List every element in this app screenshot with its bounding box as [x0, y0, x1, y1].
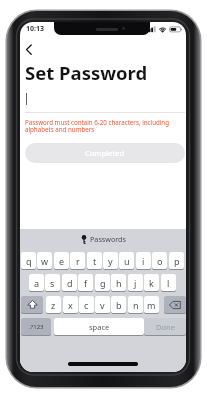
- button[interactable]: j: [128, 274, 143, 291]
- staticText: v: [100, 299, 105, 311]
- staticText: space: [89, 322, 110, 332]
- button[interactable]: Completed: [25, 143, 185, 163]
- staticText: p: [174, 255, 180, 267]
- button[interactable]: a: [29, 274, 44, 291]
- staticText: 10:13: [26, 24, 44, 34]
- staticText: Passwords: [90, 234, 126, 244]
- button[interactable]: Passwords: [20, 231, 186, 247]
- staticText: m: [147, 299, 156, 311]
- button[interactable]: x: [63, 296, 78, 313]
- button[interactable]: h: [111, 274, 126, 291]
- staticText: i: [142, 255, 145, 267]
- staticText: g: [100, 277, 106, 289]
- staticText: y: [108, 255, 113, 267]
- button[interactable]: t: [87, 252, 102, 269]
- button[interactable]: f: [78, 274, 93, 291]
- staticText: d: [67, 277, 73, 289]
- staticText: c: [84, 299, 89, 311]
- staticText: z: [51, 299, 56, 311]
- staticText: Completed: [85, 148, 125, 158]
- button[interactable]: p: [169, 252, 184, 269]
- button[interactable]: o: [152, 252, 167, 269]
- button[interactable]: s: [45, 274, 60, 291]
- staticText: Set Password: [25, 60, 148, 85]
- staticText: t: [93, 255, 97, 267]
- button[interactable]: g: [95, 274, 110, 291]
- staticText: s: [50, 277, 55, 289]
- button[interactable]: z: [46, 296, 61, 313]
- button[interactable]: space: [54, 318, 144, 335]
- button[interactable]: u: [119, 252, 134, 269]
- staticText: l: [167, 277, 170, 289]
- staticText: f: [84, 277, 88, 289]
- button[interactable]: b: [111, 296, 126, 313]
- button[interactable]: l: [161, 274, 176, 291]
- staticText: h: [116, 277, 122, 289]
- button[interactable]: w: [37, 252, 52, 269]
- staticText: r: [76, 255, 80, 267]
- button[interactable]: k: [144, 274, 159, 291]
- staticText: Done: [156, 322, 175, 332]
- button[interactable]: r: [70, 252, 85, 269]
- staticText: x: [68, 299, 73, 311]
- button[interactable]: i: [136, 252, 151, 269]
- staticText: u: [124, 255, 130, 267]
- button[interactable]: e: [54, 252, 69, 269]
- button[interactable]: [21, 296, 43, 313]
- staticText: Password must contain 6-20 characters, i…: [25, 118, 169, 134]
- button[interactable]: [164, 296, 186, 313]
- staticText: q: [26, 255, 32, 267]
- staticText: e: [59, 255, 65, 267]
- staticText: a: [34, 277, 40, 289]
- button[interactable]: q: [21, 252, 36, 269]
- staticText: n: [133, 299, 139, 311]
- button[interactable]: d: [62, 274, 77, 291]
- staticText: b: [116, 299, 122, 311]
- button[interactable]: y: [103, 252, 118, 269]
- staticText: o: [157, 255, 163, 267]
- button[interactable]: [22, 42, 35, 57]
- button[interactable]: .?123: [21, 318, 51, 335]
- staticText: w: [41, 255, 49, 267]
- button[interactable]: Done: [144, 318, 186, 335]
- button[interactable]: n: [128, 296, 143, 313]
- staticText: .?123: [29, 323, 44, 331]
- button[interactable]: m: [144, 296, 159, 313]
- button[interactable]: c: [79, 296, 94, 313]
- staticText: k: [149, 277, 154, 289]
- button[interactable]: v: [95, 296, 110, 313]
- staticText: j: [134, 277, 137, 289]
